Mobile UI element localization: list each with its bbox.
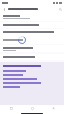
button[interactable]: Profile (43, 105, 64, 112)
other: Loading (18, 36, 26, 44)
button[interactable] (3, 70, 61, 72)
button[interactable] (0, 22, 64, 28)
button[interactable]: Back (0, 5, 8, 13)
button[interactable]: Search (56, 5, 64, 13)
button[interactable] (3, 82, 61, 84)
button[interactable]: Explore (22, 105, 43, 112)
button[interactable] (3, 78, 61, 80)
button[interactable] (3, 86, 61, 88)
button[interactable] (3, 74, 61, 76)
button[interactable] (0, 29, 64, 35)
button[interactable] (0, 13, 64, 21)
button[interactable] (0, 54, 64, 60)
button[interactable]: Home (0, 105, 22, 112)
button[interactable] (0, 45, 64, 52)
